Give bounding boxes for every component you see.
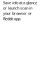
staticText: Save info at a glance or launch scan in … xyxy=(3,0,37,21)
